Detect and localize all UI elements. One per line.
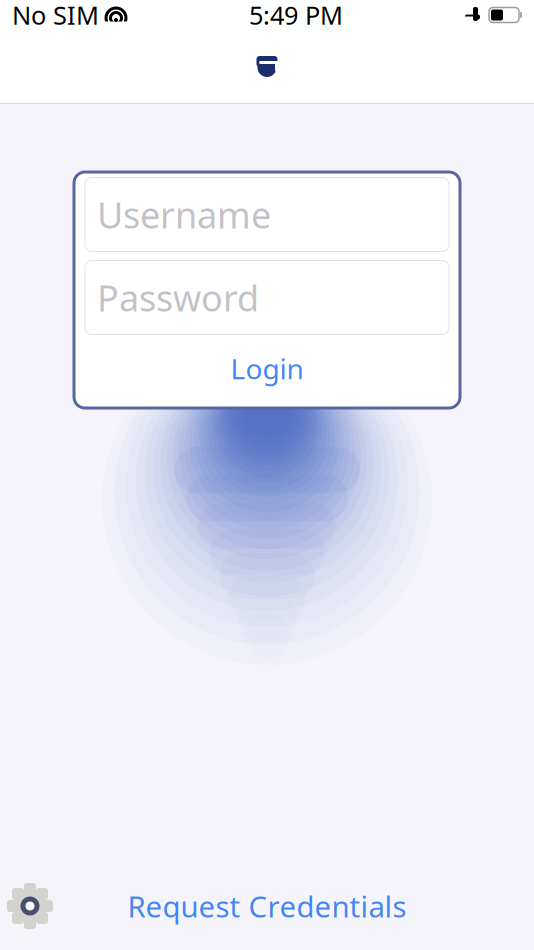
- staticText: 5:49 PM: [249, 0, 343, 32]
- staticText: Request Credentials: [127, 886, 406, 925]
- button[interactable]: Settings: [0, 876, 60, 936]
- staticText: No SIM: [12, 0, 99, 32]
- staticText: Login: [230, 350, 303, 387]
- staticText: Password: [97, 274, 259, 321]
- button[interactable]: Request Credentials: [111, 876, 422, 935]
- button[interactable]: Login: [85, 334, 449, 402]
- staticText: Username: [97, 191, 271, 238]
